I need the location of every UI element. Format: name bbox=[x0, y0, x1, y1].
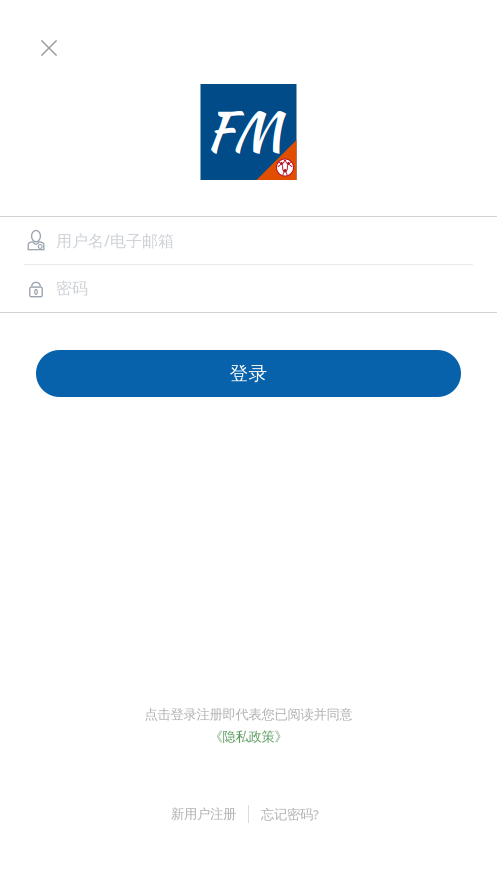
staticText: 密码 bbox=[56, 279, 88, 298]
button[interactable]: 忘记密码? bbox=[249, 805, 337, 823]
button[interactable]: Close bbox=[26, 25, 72, 71]
staticText: 《隐私政策》 bbox=[209, 729, 287, 745]
staticText: 点击登录注册即代表您已阅读并同意 bbox=[144, 706, 352, 723]
button[interactable]: 《隐私政策》 bbox=[209, 729, 287, 745]
staticText: 新用户注册 bbox=[171, 806, 236, 822]
button[interactable]: 新用户注册 bbox=[160, 806, 248, 822]
staticText: FM bbox=[205, 93, 282, 169]
staticText: 登录 bbox=[229, 362, 267, 385]
staticText: 用户名/电子邮箱 bbox=[56, 230, 174, 251]
staticText: 忘记密码? bbox=[261, 805, 319, 823]
button[interactable]: 登录 bbox=[36, 350, 461, 397]
